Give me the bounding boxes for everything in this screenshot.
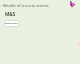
staticText: Read story [5,22,18,25]
staticText: M&S [5,11,16,17]
button[interactable]: Brand logo [69,1,76,8]
staticText: Wealth of success stories [3,3,49,7]
button[interactable]: Read story [4,20,19,27]
